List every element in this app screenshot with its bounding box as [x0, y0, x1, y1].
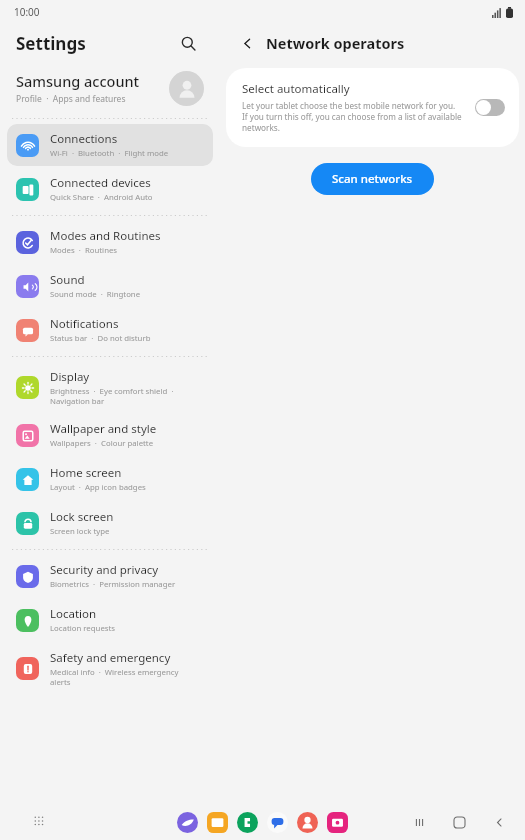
staticText: Connections — [50, 131, 118, 147]
staticText: Biometrics · Permission manager — [50, 579, 176, 590]
button[interactable]: Lock screen — [7, 502, 213, 544]
button[interactable]: Security and privacy — [7, 555, 213, 597]
staticText: Network operators — [266, 33, 405, 53]
button[interactable]: Samsung account — [0, 62, 220, 114]
staticText: Wallpapers · Colour palette — [50, 438, 154, 449]
button[interactable]: gallery — [327, 812, 348, 833]
staticText: Scan networks — [332, 171, 413, 187]
staticText: Modes and Routines — [50, 228, 161, 244]
staticText: Quick Share · Android Auto — [50, 192, 153, 203]
button[interactable]: Wallpaper and style — [7, 414, 213, 456]
staticText: Wi-Fi · Bluetooth · Flight mode — [50, 148, 169, 159]
button[interactable]: phone — [237, 812, 258, 833]
button[interactable]: Back — [487, 810, 511, 834]
staticText: Select automatically — [242, 81, 350, 97]
button[interactable]: files — [207, 812, 228, 833]
button[interactable]: Select automatically toggle — [475, 99, 505, 116]
staticText: Medical info · Wireless emergency alerts — [50, 667, 179, 687]
staticText: Notifications — [50, 316, 119, 332]
staticText: Sound mode · Ringtone — [50, 289, 141, 300]
staticText: Sound — [50, 272, 85, 288]
staticText: Profile · Apps and features — [16, 93, 126, 105]
staticText: Settings — [16, 32, 86, 55]
staticText: Display — [50, 369, 90, 385]
button[interactable]: Safety and emergency — [7, 643, 213, 693]
button[interactable]: Home — [447, 810, 471, 834]
button[interactable]: Search — [174, 29, 202, 57]
button[interactable]: Connected devices — [7, 168, 213, 210]
staticText: Brightness · Eye comfort shield · Naviga… — [50, 386, 174, 406]
staticText: Security and privacy — [50, 562, 159, 578]
staticText: Samsung account — [16, 71, 140, 91]
button[interactable]: Location — [7, 599, 213, 641]
staticText: Status bar · Do not disturb — [50, 333, 151, 344]
button[interactable]: Select automatically — [226, 68, 519, 147]
staticText: Let your tablet choose the best mobile n… — [242, 100, 462, 133]
button[interactable]: Connections — [7, 124, 213, 166]
button[interactable]: Back — [234, 30, 260, 56]
button[interactable]: Modes and Routines — [7, 221, 213, 263]
button[interactable]: internet — [177, 812, 198, 833]
staticText: Lock screen — [50, 509, 114, 525]
button[interactable]: Recents — [407, 810, 431, 834]
staticText: Location — [50, 606, 97, 622]
button[interactable]: Display — [7, 362, 213, 412]
staticText: Modes · Routines — [50, 245, 118, 256]
button[interactable]: contacts — [297, 812, 318, 833]
button[interactable]: Sound — [7, 265, 213, 307]
button[interactable]: messages — [267, 812, 288, 833]
button[interactable]: Notifications — [7, 309, 213, 351]
staticText: Screen lock type — [50, 526, 110, 537]
button[interactable]: Scan networks — [311, 163, 434, 195]
staticText: Connected devices — [50, 175, 151, 191]
staticText: Safety and emergency — [50, 650, 171, 666]
staticText: Location requests — [50, 623, 116, 634]
staticText: Home screen — [50, 465, 122, 481]
staticText: Layout · App icon badges — [50, 482, 146, 493]
button[interactable]: Home screen — [7, 458, 213, 500]
button[interactable]: Apps — [28, 810, 52, 834]
staticText: 10:00 — [14, 5, 40, 19]
staticText: Wallpaper and style — [50, 421, 157, 437]
